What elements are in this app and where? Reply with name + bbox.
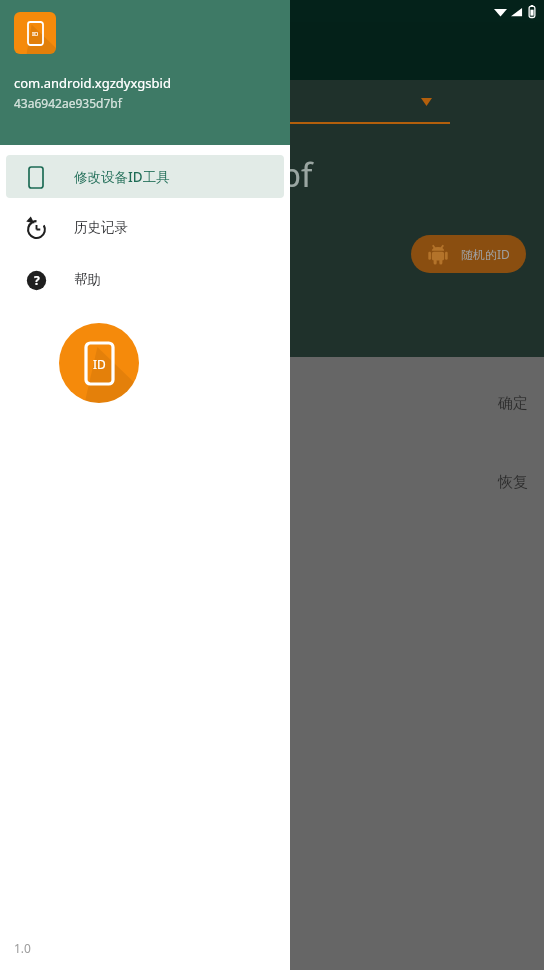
button[interactable]: ? <box>6 258 284 301</box>
staticText: 随机的ID <box>461 246 510 262</box>
staticText: com.android.xgzdyxgsbid <box>14 74 171 92</box>
staticText: 修改设备ID工具 <box>74 168 170 186</box>
staticText: 43a6942ae935d7bf <box>16 152 313 197</box>
button[interactable]: 历史记录 <box>6 206 284 249</box>
staticText: 确定 <box>498 394 528 413</box>
staticText: 11:34 <box>8 2 42 20</box>
staticText: 43a6942ae935d7bf <box>14 95 122 111</box>
button[interactable]: 修改设备ID工具 <box>6 155 284 198</box>
button[interactable]: 恢复 <box>0 436 544 513</box>
staticText: 帮助 <box>74 271 101 288</box>
staticText: 1.0 <box>14 940 31 956</box>
staticText: ? <box>34 272 40 288</box>
other: App logo <box>59 323 139 403</box>
staticText: ID <box>32 30 39 38</box>
staticText: 历史记录 <box>74 219 128 236</box>
staticText: ID <box>93 356 106 372</box>
button[interactable]: 随机的ID <box>411 235 526 273</box>
button[interactable]: 确定 <box>0 357 544 434</box>
staticText: 恢复 <box>498 473 528 492</box>
